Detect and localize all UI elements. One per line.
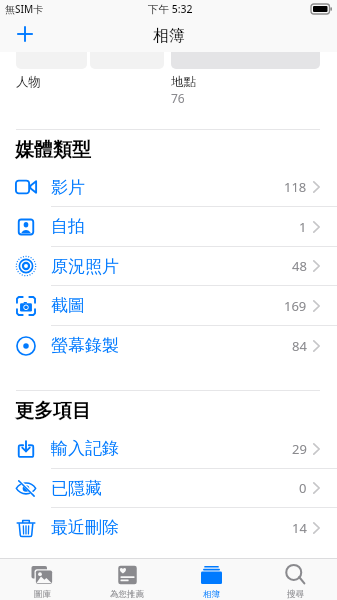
staticText: 76 bbox=[171, 90, 185, 106]
button[interactable]: 自拍 bbox=[0, 207, 337, 247]
staticText: 最近刪除 bbox=[51, 517, 119, 538]
staticText: 169 bbox=[284, 297, 307, 315]
staticText: 0 bbox=[299, 479, 307, 497]
button[interactable]: 已隱藏 bbox=[0, 469, 337, 508]
button[interactable]: 輸入記錄 bbox=[0, 429, 337, 469]
staticText: 29 bbox=[292, 440, 307, 458]
staticText: 118 bbox=[284, 178, 307, 196]
button[interactable]: 原況照片 bbox=[0, 247, 337, 286]
button[interactable]: 影片 bbox=[0, 168, 337, 207]
staticText: 圖庫 bbox=[34, 589, 51, 600]
staticText: 原況照片 bbox=[51, 256, 119, 277]
staticText: 輸入記錄 bbox=[51, 438, 119, 459]
staticText: 相簿 bbox=[153, 26, 185, 46]
staticText: 截圖 bbox=[51, 295, 85, 316]
staticText: 影片 bbox=[51, 177, 85, 198]
staticText: 48 bbox=[292, 257, 307, 275]
button[interactable]: 圖庫 bbox=[0, 559, 85, 600]
button[interactable]: 搜尋 bbox=[253, 559, 337, 600]
staticText: 媒體類型 bbox=[15, 138, 91, 162]
staticText: 14 bbox=[292, 519, 307, 537]
staticText: 螢幕錄製 bbox=[51, 335, 119, 356]
staticText: 1 bbox=[299, 218, 307, 236]
button[interactable]: 相簿 bbox=[169, 559, 253, 600]
button[interactable]: 截圖 bbox=[0, 286, 337, 326]
button[interactable]: 最近刪除 bbox=[0, 508, 337, 547]
staticText: 搜尋 bbox=[287, 589, 304, 600]
staticText: 為您推薦 bbox=[110, 589, 144, 600]
staticText: 自拍 bbox=[51, 216, 85, 237]
staticText: 下午 5:32 bbox=[148, 2, 193, 16]
staticText: 更多項目 bbox=[15, 399, 91, 423]
staticText: 已隱藏 bbox=[51, 478, 102, 499]
staticText: 84 bbox=[292, 337, 307, 355]
staticText: 無SIM卡 bbox=[5, 2, 44, 16]
button[interactable]: 為您推薦 bbox=[85, 559, 169, 600]
staticText: 人物 bbox=[16, 74, 41, 90]
staticText: 相簿 bbox=[203, 589, 220, 600]
staticText: 地點 bbox=[171, 74, 196, 90]
button[interactable]: 螢幕錄製 bbox=[0, 326, 337, 365]
button[interactable]: Add album bbox=[11, 20, 39, 48]
